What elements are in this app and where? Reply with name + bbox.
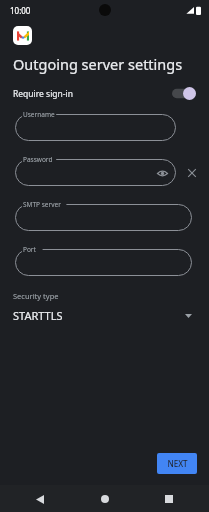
button[interactable]: Require sign-in [0,84,209,103]
button[interactable]: Port [13,247,194,278]
button[interactable]: Security type [0,289,209,325]
button[interactable]: Password [13,157,178,188]
staticText: Username [23,110,55,119]
staticText: Outgoing server settings [13,54,183,74]
button[interactable]: Back [30,489,50,509]
staticText: NEXT [167,458,188,469]
button[interactable]: Show password [155,166,169,180]
button[interactable]: Require sign-in toggle [172,87,196,100]
staticText: Security type [13,291,59,301]
button[interactable]: NEXT [157,453,197,474]
button[interactable]: Home [95,489,115,509]
staticText: Require sign-in [13,88,74,100]
other: Open security type menu [182,310,194,322]
button[interactable]: Clear password [182,163,202,183]
staticText: SMTP server [23,200,61,209]
staticText: Password [23,155,53,164]
button[interactable]: Username [13,112,178,143]
staticText: STARTTLS [13,308,63,323]
button[interactable]: SMTP server [13,202,194,233]
button[interactable]: Recent apps [159,489,179,509]
button[interactable]: Gmail [13,26,32,45]
staticText: 10:00 [10,5,31,16]
staticText: Port [23,245,36,254]
